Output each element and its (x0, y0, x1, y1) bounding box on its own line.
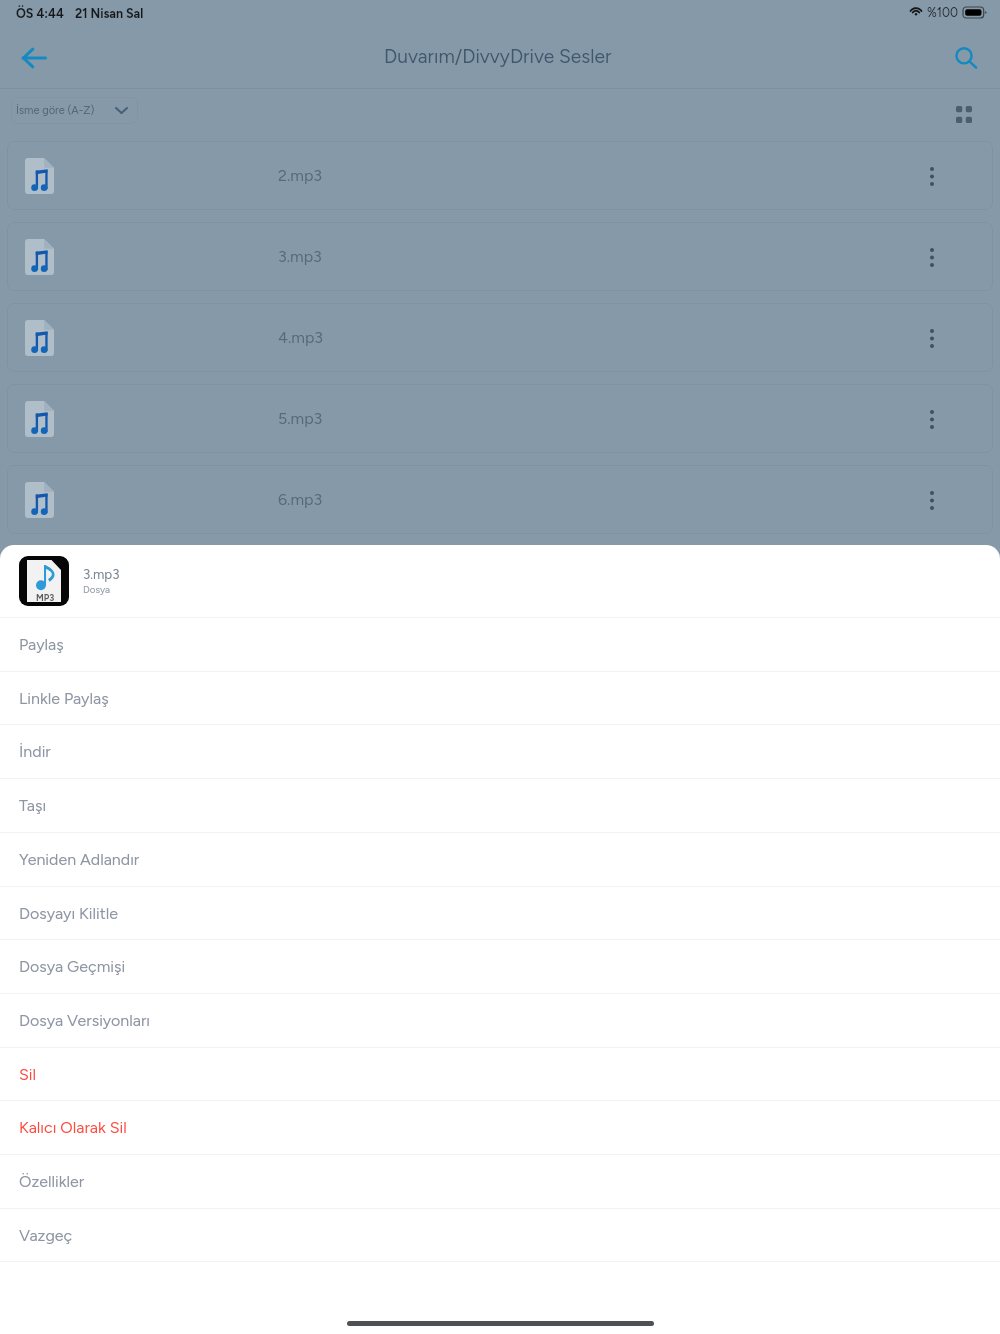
button[interactable]: Dosyayı Kilitle (0, 887, 1000, 939)
button[interactable]: More options (917, 404, 947, 434)
button[interactable]: Dosya Versiyonları (0, 994, 1000, 1047)
button[interactable]: İndir (0, 725, 1000, 778)
button[interactable]: Search (944, 36, 988, 80)
button[interactable]: More options (917, 485, 947, 515)
staticText: Paylaş (19, 635, 64, 654)
button[interactable]: 6.mp3 (7, 465, 993, 534)
staticText: 3.mp3 (83, 566, 120, 582)
button[interactable]: 7.mp3 (7, 546, 993, 615)
button[interactable]: 3.mp3 (7, 222, 993, 291)
button[interactable]: MP3 (0, 545, 1000, 617)
staticText: İsme göre (A-Z) (16, 104, 95, 117)
button[interactable]: Kalıcı Olarak Sil (0, 1101, 1000, 1154)
staticText: 5.mp3 (278, 409, 323, 428)
button[interactable]: Sil (0, 1048, 1000, 1100)
staticText: Vazgeç (19, 1226, 73, 1245)
staticText: 2.mp3 (278, 166, 323, 185)
staticText: İndir (19, 742, 51, 761)
staticText: Dosya Versiyonları (19, 1011, 151, 1030)
staticText: Dosya (83, 584, 111, 596)
button[interactable]: 8.mp3 (7, 627, 993, 696)
button[interactable]: More options (917, 161, 947, 191)
button[interactable]: Dosya Geçmişi (0, 940, 1000, 993)
button[interactable]: More options (917, 323, 947, 353)
staticText: MP3 (36, 592, 55, 603)
staticText: Taşı (19, 796, 47, 815)
staticText: 6.mp3 (278, 490, 323, 509)
staticText: Kalıcı Olarak Sil (19, 1118, 127, 1137)
staticText: Dosya Geçmişi (19, 957, 126, 976)
button[interactable]: 4.mp3 (7, 303, 993, 372)
staticText: Yeniden Adlandır (19, 850, 140, 869)
staticText: 4.mp3 (278, 328, 324, 347)
staticText: Sil (19, 1065, 37, 1084)
staticText: %100 (927, 5, 959, 20)
button[interactable]: Vazgeç (0, 1209, 1000, 1261)
staticText: Duvarım/DivvyDrive Sesler (384, 45, 612, 68)
button[interactable]: More options (917, 242, 947, 272)
button[interactable]: Taşı (0, 779, 1000, 832)
button[interactable]: Grid view (946, 96, 982, 132)
button[interactable]: Back (10, 34, 58, 82)
button[interactable]: 2.mp3 (7, 141, 993, 210)
staticText: ÖS 4:44 (16, 6, 64, 21)
button[interactable]: Yeniden Adlandır (0, 833, 1000, 886)
staticText: Linkle Paylaş (19, 689, 109, 708)
staticText: 3.mp3 (278, 247, 322, 266)
staticText: 21 Nisan Sal (75, 6, 144, 21)
button[interactable]: Paylaş (0, 618, 1000, 671)
button[interactable]: Linkle Paylaş (0, 672, 1000, 724)
staticText: Özellikler (19, 1172, 85, 1191)
staticText: Dosyayı Kilitle (19, 904, 119, 923)
button[interactable]: 5.mp3 (7, 384, 993, 453)
button[interactable]: İsme göre (A-Z) (11, 97, 138, 124)
button[interactable]: Özellikler (0, 1155, 1000, 1208)
